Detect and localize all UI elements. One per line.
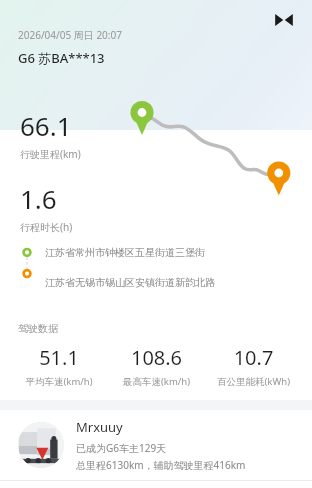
staticText: 1.6: [20, 181, 312, 216]
staticText: 10.7: [205, 344, 302, 371]
staticText: G6 苏BA***13: [18, 49, 312, 67]
button[interactable]: 江苏省常州市钟楼区五星街道三堡街: [45, 246, 312, 259]
staticText: 驾驶数据: [18, 322, 312, 335]
staticText: 江苏省无锡市锡山区安镇街道新韵北路: [45, 276, 312, 289]
button[interactable]: Collapse: [268, 4, 300, 36]
staticText: 108.6: [108, 344, 205, 371]
staticText: 百公里能耗(kWh): [205, 375, 302, 388]
staticText: 江苏省常州市钟楼区五星街道三堡街: [45, 246, 312, 259]
button[interactable]: 108.6: [108, 344, 205, 388]
staticText: 平均车速(km/h): [10, 375, 108, 388]
staticText: 行程时长(h): [20, 220, 312, 234]
staticText: 2026/04/05 周日 20:07: [18, 28, 312, 42]
staticText: 总里程6130km，辅助驾驶里程416km: [76, 458, 312, 472]
staticText: 51.1: [10, 344, 108, 371]
staticText: 行驶里程(km): [20, 147, 312, 161]
staticText: 已成为G6车主129天: [76, 441, 312, 455]
button[interactable]: 江苏省无锡市锡山区安镇街道新韵北路: [45, 276, 312, 289]
button[interactable]: Mrxuuy: [0, 410, 312, 480]
button[interactable]: 51.1: [10, 344, 108, 388]
staticText: Mrxuuy: [76, 418, 312, 436]
staticText: 最高车速(km/h): [108, 375, 205, 388]
staticText: 66.1: [20, 108, 312, 143]
button[interactable]: 10.7: [205, 344, 302, 388]
